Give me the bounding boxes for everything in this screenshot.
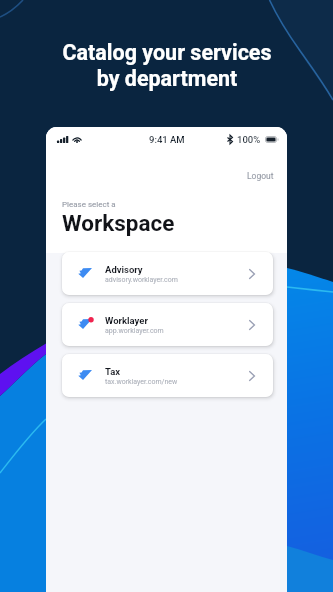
staticText: Worklayer: [105, 315, 148, 326]
staticText: 100%: [237, 134, 261, 145]
staticText: Please select a: [62, 200, 116, 209]
staticText: tax.worklayer.com/new: [105, 378, 178, 386]
button[interactable]: Advisory: [62, 252, 273, 295]
button[interactable]: Worklayer: [62, 303, 273, 346]
staticText: Catalog your services by department: [62, 40, 272, 91]
staticText: Tax: [105, 366, 121, 377]
button[interactable]: Logout: [234, 169, 287, 183]
staticText: Advisory: [105, 264, 143, 275]
staticText: Workspace: [62, 210, 175, 236]
staticText: Logout: [247, 171, 274, 181]
staticText: app.worklayer.com: [105, 327, 164, 335]
staticText: 9:41 AM: [149, 134, 185, 145]
staticText: advisory.worklayer.com: [105, 276, 178, 284]
button[interactable]: Tax: [62, 354, 273, 397]
